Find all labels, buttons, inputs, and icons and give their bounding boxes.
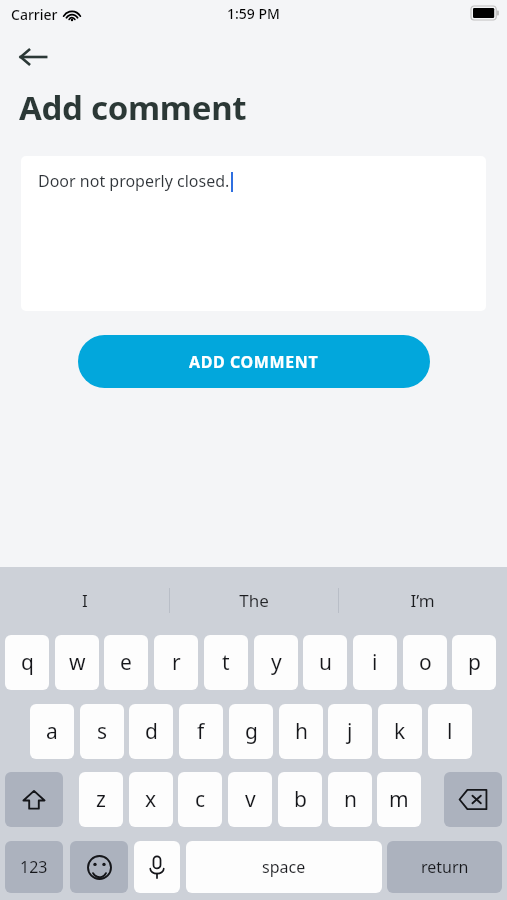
button[interactable]: I’m — [338, 567, 507, 633]
button[interactable]: I — [0, 567, 169, 633]
staticText: u — [319, 648, 332, 677]
button[interactable]: g — [229, 704, 273, 759]
button[interactable]: s — [80, 704, 124, 759]
button[interactable]: v — [228, 772, 272, 827]
staticText: Door not properly closed. — [38, 170, 230, 192]
staticText: k — [394, 717, 406, 746]
button[interactable]: w — [55, 635, 99, 690]
staticText: 1:59 PM — [227, 4, 280, 23]
button[interactable]: Shift — [5, 772, 63, 827]
staticText: p — [468, 648, 481, 677]
staticText: Add comment — [19, 85, 247, 130]
staticText: ADD COMMENT — [189, 351, 319, 373]
button[interactable]: return — [387, 841, 502, 893]
button[interactable]: h — [279, 704, 323, 759]
staticText: 123 — [20, 856, 48, 878]
button[interactable]: d — [129, 704, 173, 759]
staticText: t — [222, 648, 230, 677]
button[interactable]: b — [278, 772, 322, 827]
staticText: w — [69, 648, 86, 677]
button[interactable]: 123 — [5, 841, 63, 893]
button[interactable]: l — [428, 704, 472, 759]
button[interactable]: y — [254, 635, 298, 690]
button[interactable]: f — [179, 704, 223, 759]
staticText: y — [271, 648, 282, 677]
button[interactable]: p — [452, 635, 496, 690]
button[interactable]: Dictation — [134, 841, 180, 893]
staticText: g — [245, 717, 258, 746]
button[interactable]: z — [79, 772, 123, 827]
button[interactable]: space — [186, 841, 382, 893]
button[interactable]: m — [377, 772, 421, 827]
button[interactable]: x — [129, 772, 173, 827]
staticText: x — [145, 785, 157, 814]
staticText: o — [419, 648, 432, 677]
staticText: The — [239, 589, 269, 612]
staticText: i — [372, 648, 378, 677]
staticText: space — [262, 856, 306, 878]
button[interactable]: t — [204, 635, 248, 690]
button[interactable]: e — [104, 635, 148, 690]
staticText: n — [344, 785, 357, 814]
staticText: b — [294, 785, 307, 814]
staticText: Carrier — [11, 5, 58, 24]
button[interactable]: n — [328, 772, 372, 827]
staticText: v — [245, 785, 256, 814]
staticText: f — [197, 717, 205, 746]
staticText: c — [195, 785, 206, 814]
button[interactable]: Door not properly closed. — [21, 156, 486, 311]
button[interactable]: The — [169, 567, 338, 633]
button[interactable]: j — [328, 704, 372, 759]
button[interactable]: q — [5, 635, 49, 690]
button[interactable]: Emoji — [70, 841, 128, 893]
button[interactable]: k — [378, 704, 422, 759]
staticText: I — [82, 589, 88, 612]
button[interactable]: c — [178, 772, 222, 827]
button[interactable]: ADD COMMENT — [78, 335, 430, 388]
staticText: d — [145, 717, 158, 746]
button[interactable]: i — [353, 635, 397, 690]
staticText: z — [96, 785, 106, 814]
staticText: q — [21, 648, 34, 677]
staticText: h — [295, 717, 308, 746]
staticText: e — [120, 648, 132, 677]
button[interactable]: r — [154, 635, 198, 690]
staticText: a — [46, 717, 58, 746]
staticText: I’m — [410, 589, 435, 612]
staticText: s — [97, 717, 108, 746]
staticText: j — [347, 717, 353, 746]
staticText: return — [421, 856, 469, 878]
staticText: m — [389, 785, 409, 814]
button[interactable]: Back — [12, 38, 54, 76]
button[interactable]: Backspace — [444, 772, 502, 827]
button[interactable]: a — [30, 704, 74, 759]
staticText: l — [447, 717, 453, 746]
button[interactable]: u — [303, 635, 347, 690]
staticText: r — [172, 648, 181, 677]
button[interactable]: o — [403, 635, 447, 690]
